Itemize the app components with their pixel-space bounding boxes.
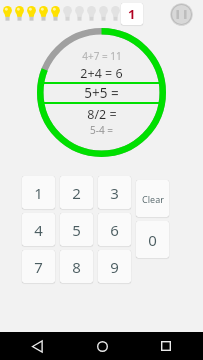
staticText: 0	[148, 230, 157, 250]
button[interactable]: 1	[22, 176, 55, 209]
staticText: 2+4 = 6	[80, 65, 123, 80]
button[interactable]: 4	[22, 213, 55, 246]
button[interactable]: 6	[98, 213, 131, 246]
staticText: 5	[72, 220, 81, 240]
staticText: 5+5 =	[84, 84, 119, 102]
staticText: 8/2 =	[87, 106, 117, 121]
staticText: 8	[72, 257, 81, 277]
button[interactable]: 0	[136, 221, 169, 258]
staticText: 4+7 = 11	[82, 49, 122, 63]
button[interactable]: 1	[121, 3, 143, 25]
staticText: 5-4 =	[90, 123, 113, 137]
staticText: 3	[110, 183, 119, 203]
button[interactable]: 2	[60, 176, 93, 209]
button[interactable]: 5	[60, 213, 93, 246]
staticText: 4	[34, 220, 43, 240]
button[interactable]: 7	[22, 250, 55, 283]
button[interactable]: Clear	[136, 180, 169, 217]
button[interactable]: 9	[98, 250, 131, 283]
staticText: 2	[72, 183, 81, 203]
staticText: 9	[110, 257, 119, 277]
button[interactable]: Pause	[170, 3, 193, 26]
button[interactable]: Back	[24, 333, 50, 359]
button[interactable]: Recent apps	[153, 333, 179, 359]
staticText: 1	[34, 183, 43, 203]
staticText: 7	[34, 257, 43, 277]
staticText: 1	[128, 5, 136, 23]
staticText: Clear	[142, 193, 164, 205]
button[interactable]: 8	[60, 250, 93, 283]
button[interactable]: Home	[89, 333, 115, 359]
staticText: 6	[110, 220, 119, 240]
button[interactable]: 3	[98, 176, 131, 209]
